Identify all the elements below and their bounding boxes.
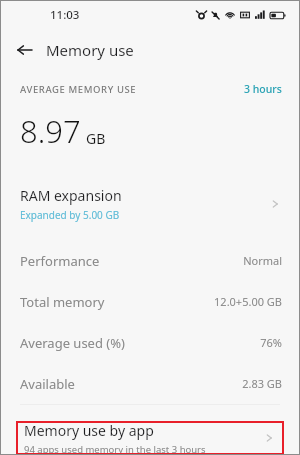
staticText: AVERAGE MEMORY USE [20, 83, 137, 96]
staticText: Expanded by 5.00 GB [20, 208, 120, 222]
staticText: Total memory [20, 293, 105, 311]
button[interactable]: RAM expansion [0, 180, 300, 228]
staticText: 11:03 [50, 7, 80, 23]
staticText: 94 apps used memory in the last 3 hours [24, 443, 206, 455]
staticText: 76% [260, 335, 282, 350]
button[interactable]: Average used (%) [0, 322, 300, 363]
staticText: 2.83 GB [242, 376, 282, 391]
staticText: Memory use by app [24, 421, 154, 440]
button[interactable]: Back [10, 35, 40, 65]
staticText: Performance [20, 252, 100, 270]
staticText: Normal [243, 253, 282, 268]
staticText: RAM expansion [20, 186, 122, 205]
staticText: Available [20, 375, 75, 393]
staticText: 3 hours [244, 82, 282, 96]
staticText: Memory use [46, 40, 134, 60]
staticText: 12.0+5.00 GB [214, 294, 282, 309]
button[interactable]: Memory use by app [16, 421, 284, 455]
button[interactable]: Performance [0, 240, 300, 281]
button[interactable]: 3 hours [244, 82, 282, 96]
staticText: 8.97 [20, 110, 81, 152]
staticText: Average used (%) [20, 334, 125, 352]
button[interactable]: Total memory [0, 281, 300, 322]
staticText: GB [86, 129, 106, 148]
button[interactable]: Available [0, 363, 300, 404]
